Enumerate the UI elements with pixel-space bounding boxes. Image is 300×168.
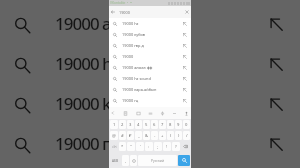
button[interactable]: *: [119, 142, 126, 151]
button[interactable]: Backspace: [181, 142, 190, 151]
button[interactable]: 9: [175, 120, 182, 129]
button[interactable]: ): [175, 131, 182, 140]
staticText: ': [140, 144, 141, 149]
button[interactable]: Insert suggestion: [183, 55, 187, 59]
button[interactable]: Keyboard tool: [148, 111, 153, 116]
staticText: 9: [177, 122, 180, 128]
button[interactable]: -: [151, 131, 158, 140]
staticText: ): [178, 133, 180, 139]
button[interactable]: 19000 кара-айбын: [109, 84, 191, 95]
button[interactable]: Insert suggestion: [183, 33, 187, 37]
button[interactable]: &: [143, 131, 150, 140]
button[interactable]: ;: [154, 142, 162, 151]
staticText: 19000 гц: [55, 132, 119, 155]
button[interactable]: ": [127, 142, 135, 151]
button[interactable]: Insert suggestion: [183, 88, 187, 92]
button[interactable]: 3: [127, 120, 134, 129]
button[interactable]: 4: [135, 120, 142, 129]
button[interactable]: 19000 кубов: [109, 29, 191, 40]
button[interactable]: /: [183, 131, 190, 140]
staticText: (: [170, 133, 172, 139]
button[interactable]: 19000: [109, 51, 191, 62]
staticText: 19000 ал: [55, 12, 120, 35]
button[interactable]: :: [145, 142, 153, 151]
button[interactable]: 7: [159, 120, 166, 129]
staticText: 19000 ku: [55, 92, 121, 115]
button[interactable]: 19000 hz sound: [109, 73, 191, 84]
button[interactable]: 19000 ku: [0, 83, 300, 123]
button[interactable]: #: [119, 131, 126, 140]
button[interactable]: 19000 гц: [0, 123, 300, 163]
button[interactable]: Русский: [138, 155, 177, 166]
button[interactable]: 2: [119, 120, 126, 129]
button[interactable]: ₽: [127, 131, 134, 140]
button[interactable]: 0: [183, 120, 190, 129]
staticText: 19000 hz: [122, 21, 139, 26]
button[interactable]: Keyboard tool: [123, 111, 128, 116]
button[interactable]: 19000 алмаз фф: [109, 62, 191, 73]
staticText: #: [121, 133, 124, 139]
button[interactable]: Insert suggestion: [183, 77, 187, 81]
button[interactable]: ': [136, 142, 144, 151]
staticText: ": [130, 144, 132, 149]
staticText: 19000: [119, 10, 130, 15]
staticText: ;: [157, 144, 159, 149]
staticText: 1: [113, 122, 116, 128]
staticText: *: [121, 144, 124, 149]
staticText: 7: [161, 122, 164, 128]
button[interactable]: Keyboard tool: [136, 111, 141, 116]
button[interactable]: Insert suggestion: [269, 57, 284, 72]
button[interactable]: 5: [143, 120, 150, 129]
button[interactable]: (: [167, 131, 174, 140]
staticText: 19000 алмаз фф: [122, 65, 153, 70]
button[interactable]: ,: [122, 155, 129, 166]
button[interactable]: Clear: [185, 10, 189, 14]
button[interactable]: Back: [111, 10, 115, 14]
button[interactable]: Insert suggestion: [183, 22, 187, 26]
button[interactable]: Voice input: [184, 111, 189, 116]
button[interactable]: 19000 ал: [0, 3, 300, 43]
staticText: 19000: [122, 54, 134, 59]
button[interactable]: Emoji: [130, 155, 137, 166]
staticText: &: [145, 133, 149, 139]
staticText: 3: [129, 122, 132, 128]
button[interactable]: Insert suggestion: [269, 17, 284, 32]
button[interactable]: Insert suggestion: [269, 137, 284, 152]
button[interactable]: АБВ: [110, 155, 121, 166]
button[interactable]: +: [159, 131, 166, 140]
staticText: 19000 кубов: [122, 32, 146, 37]
staticText: 19000 hz sound: [122, 76, 151, 81]
staticText: /: [186, 133, 188, 139]
button[interactable]: Insert suggestion: [183, 44, 187, 48]
button[interactable]: 19000 hz: [109, 18, 191, 29]
button[interactable]: Insert suggestion: [183, 99, 187, 103]
staticText: 0: [185, 122, 188, 128]
button[interactable]: 19000 гц: [109, 95, 191, 106]
button[interactable]: !: [163, 142, 171, 151]
staticText: ?: [175, 144, 177, 149]
staticText: :: [148, 144, 150, 149]
button[interactable]: Search: [178, 155, 190, 166]
button[interactable]: Insert suggestion: [269, 97, 284, 112]
button[interactable]: _: [135, 131, 142, 140]
staticText: =\<: [112, 145, 117, 149]
staticText: 6: [153, 122, 156, 128]
button[interactable]: More: [111, 111, 115, 115]
button[interactable]: @: [110, 131, 118, 140]
staticText: +: [161, 133, 164, 139]
staticText: 5: [145, 122, 148, 128]
button[interactable]: Insert suggestion: [183, 66, 187, 70]
staticText: 8: [169, 122, 172, 128]
staticText: ₽: [129, 133, 132, 139]
button[interactable]: 19000 hz: [0, 43, 300, 83]
staticText: VKontakte • ••: [110, 1, 133, 5]
staticText: _: [138, 133, 140, 139]
button[interactable]: ?: [172, 142, 180, 151]
button[interactable]: 1: [110, 120, 118, 129]
button[interactable]: Symbols: [110, 142, 118, 151]
button[interactable]: Keyboard tool: [172, 111, 177, 116]
button[interactable]: 8: [167, 120, 174, 129]
button[interactable]: Keyboard tool: [160, 111, 165, 116]
button[interactable]: 19000 гвр.д: [109, 40, 191, 51]
button[interactable]: 6: [151, 120, 158, 129]
